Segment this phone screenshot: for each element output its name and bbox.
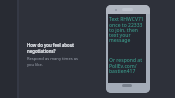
staticText: Text RHWCV71 once to 22333 to join, then…	[109, 16, 145, 44]
staticText: Or respond at PollEv.com/bastien417	[109, 57, 145, 75]
staticText: Respond as many times as you like.	[27, 56, 79, 68]
staticText: How do you feel about negotiations?	[27, 42, 79, 54]
